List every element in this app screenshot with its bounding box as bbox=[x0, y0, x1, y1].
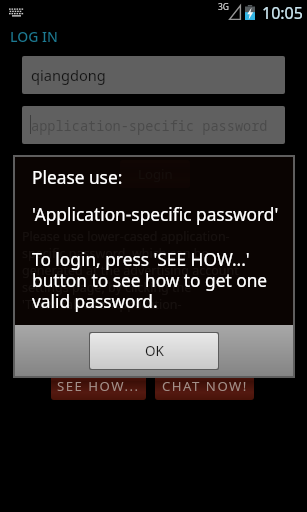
staticText: specific password, which can be bbox=[22, 245, 209, 262]
staticText: OK bbox=[145, 342, 164, 360]
staticText: Please use lower-cased application- bbox=[22, 228, 230, 245]
staticText: settings page, by clicking the bbox=[22, 279, 192, 296]
button[interactable]: SEE HOW... bbox=[51, 372, 146, 400]
staticText: To login, press 'SEE HOW...' button to s… bbox=[32, 248, 268, 313]
staticText: 10:05 bbox=[262, 2, 303, 24]
staticText: qiangdong bbox=[31, 65, 106, 85]
staticText: generated at the advertising account bbox=[22, 262, 239, 279]
button[interactable]: application-specific password bbox=[22, 106, 285, 144]
staticText: LOG IN bbox=[10, 27, 58, 46]
staticText: SEE HOW... bbox=[57, 377, 140, 395]
button[interactable]: qiangdong bbox=[22, 56, 285, 94]
staticText: application-specific password bbox=[31, 116, 268, 135]
button[interactable]: CHAT NOW! bbox=[155, 372, 254, 400]
other: Keyboard bbox=[9, 8, 24, 17]
staticText: 3G bbox=[218, 1, 230, 13]
button[interactable]: Login bbox=[120, 160, 190, 188]
staticText: 'Tools' tab and 'Application- bbox=[22, 296, 182, 313]
staticText: CHAT NOW! bbox=[162, 377, 248, 395]
staticText: 'Application-specific password' bbox=[32, 203, 279, 227]
staticText: Please use: bbox=[32, 166, 123, 190]
button[interactable]: OK bbox=[90, 333, 218, 369]
